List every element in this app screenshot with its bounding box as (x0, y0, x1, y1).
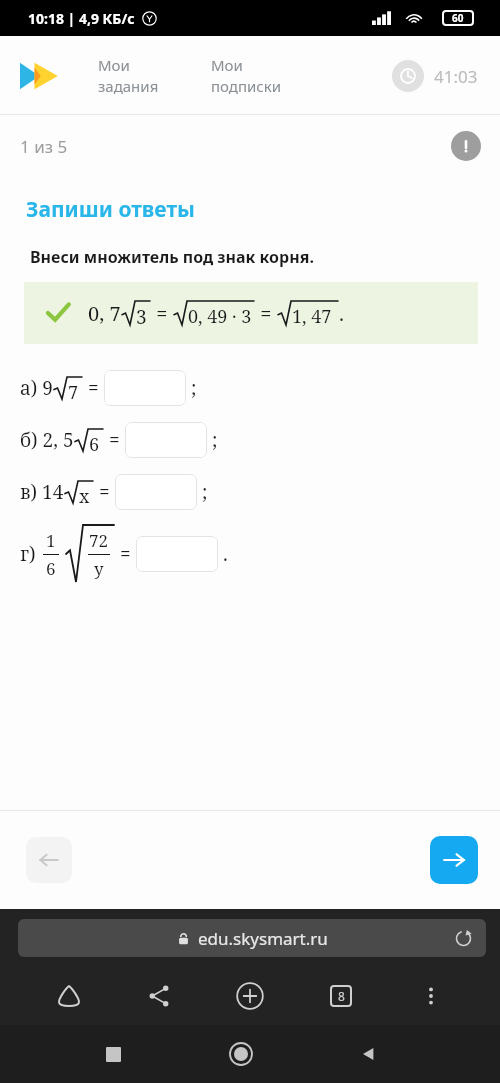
button[interactable]: Главная (47, 974, 91, 1018)
staticText: 6 (89, 432, 100, 453)
staticText: 8 (338, 988, 345, 1004)
staticText: 0, 49 · 3 (188, 304, 252, 327)
button[interactable]: Обновить (452, 927, 474, 949)
staticText: = (115, 541, 136, 567)
staticText: 0, 7 (88, 300, 121, 327)
staticText: x (79, 484, 90, 505)
button[interactable]: Вкладки (319, 974, 363, 1018)
button[interactable] (104, 370, 186, 406)
staticText: edu.skysmart.ru (198, 927, 328, 950)
staticText: 3 (136, 304, 147, 327)
button[interactable]: Домой (219, 1032, 263, 1076)
staticText: Мои подписки (211, 55, 282, 97)
staticText: г) (20, 541, 41, 567)
staticText: Мои задания (98, 55, 159, 97)
button[interactable]: Мои подписки (211, 55, 282, 97)
button[interactable]: Мои задания (98, 55, 159, 97)
button[interactable] (115, 474, 197, 510)
staticText: Внеси множитель под знак корня. (30, 246, 314, 268)
button[interactable] (136, 536, 218, 572)
staticText: 10:18 | 4,9 КБ/с (28, 9, 135, 28)
button[interactable]: edu.skysmart.ru (18, 919, 486, 957)
staticText: y (94, 557, 104, 580)
button[interactable]: 41:03 (392, 60, 478, 92)
button[interactable]: Назад (347, 1032, 391, 1076)
button[interactable]: Подсказка (451, 131, 481, 161)
button[interactable]: Меню (409, 974, 453, 1018)
staticText: 72 (89, 529, 109, 552)
staticText: ; (186, 375, 197, 401)
staticText: ; (207, 427, 218, 453)
staticText: 7 (68, 380, 79, 401)
staticText: 41:03 (434, 65, 478, 88)
button[interactable]: Новая вкладка (228, 974, 272, 1018)
staticText: = (151, 300, 173, 327)
staticText: . (218, 541, 228, 567)
staticText: 1 (46, 529, 56, 552)
staticText: б) 2, 5 (20, 427, 74, 453)
staticText: а) 9 (20, 375, 53, 401)
button[interactable] (125, 422, 207, 458)
button[interactable]: Недавние (91, 1032, 135, 1076)
staticText: = (83, 375, 104, 401)
button[interactable]: Поделиться (137, 974, 181, 1018)
staticText: 6 (46, 557, 56, 580)
button[interactable]: Назад (26, 837, 72, 883)
staticText: 1, 47 (292, 304, 332, 327)
staticText: Запиши ответы (26, 195, 195, 224)
button[interactable]: Далее (430, 836, 478, 884)
staticText: в) 14 (20, 479, 64, 505)
staticText: 1 из 5 (20, 135, 68, 158)
button[interactable]: Skysmart (18, 52, 66, 100)
staticText: 60 (452, 11, 464, 25)
staticText: = (94, 479, 115, 505)
staticText: = (255, 300, 277, 327)
staticText: . (339, 300, 344, 327)
staticText: ; (197, 479, 208, 505)
staticText: = (104, 427, 125, 453)
